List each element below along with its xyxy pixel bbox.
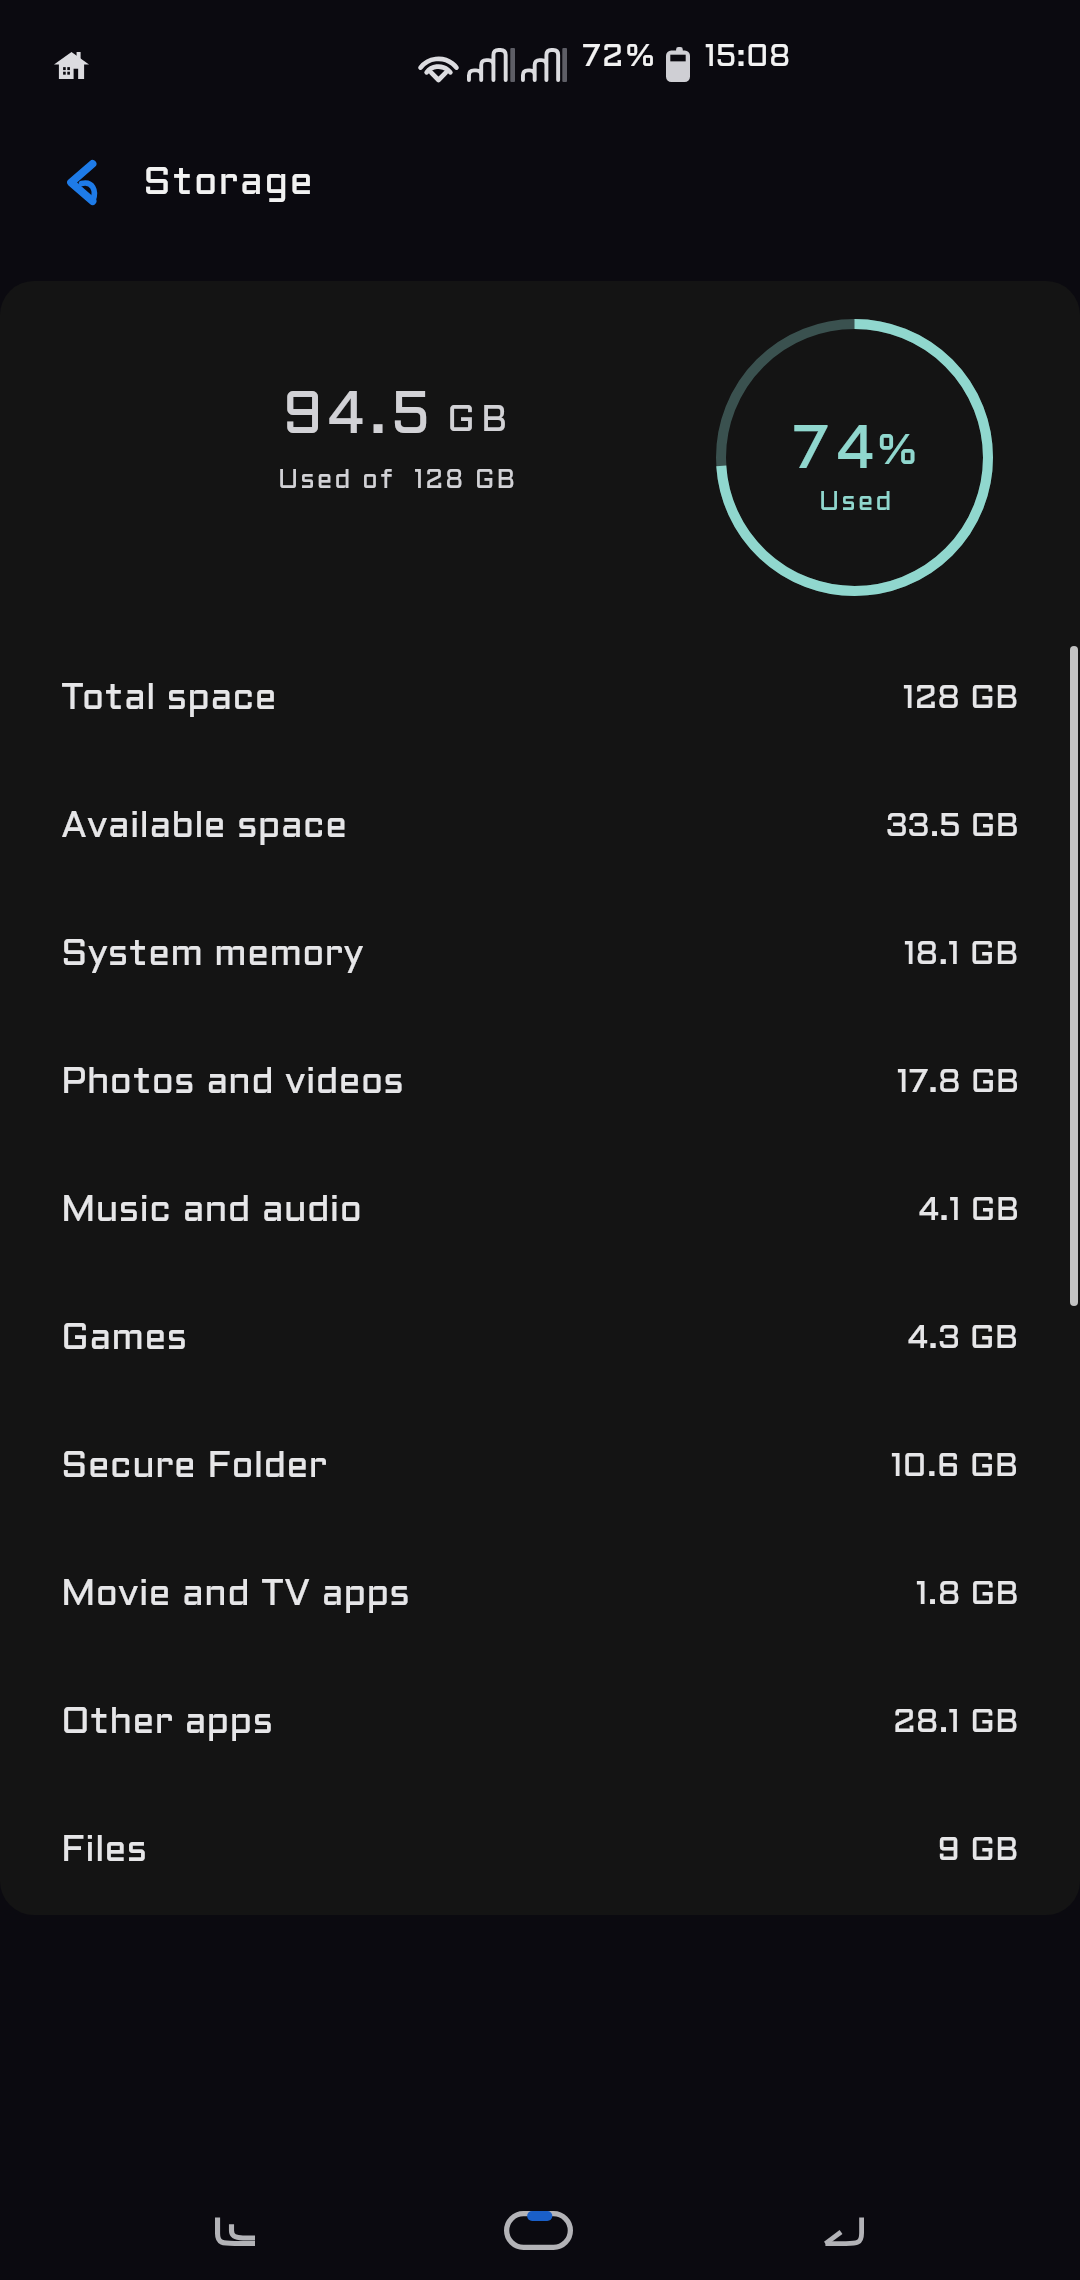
button[interactable]: Total space (0, 635, 1080, 763)
staticText: GB (447, 404, 514, 438)
staticText: Available space (61, 810, 348, 844)
button[interactable]: Back (783, 2175, 903, 2280)
staticText: Files (61, 1834, 148, 1868)
staticText: Music and audio (61, 1194, 362, 1228)
button[interactable]: Files (0, 1787, 1080, 1915)
staticText: Total space (61, 682, 277, 716)
button[interactable]: System memory (0, 891, 1080, 1019)
staticText: Other apps (61, 1706, 274, 1740)
staticText: Movie and TV apps (61, 1578, 411, 1612)
staticText: 15:08 (705, 44, 791, 73)
staticText: 10.6 GB (891, 1452, 1019, 1483)
button[interactable]: Back (45, 141, 117, 223)
staticText: 94.5 (282, 391, 435, 446)
staticText: Secure Folder (61, 1450, 328, 1484)
staticText: Photos and videos (61, 1066, 404, 1100)
staticText: Used (819, 491, 894, 515)
staticText: Storage (143, 166, 314, 202)
staticText: 4.3 GB (908, 1324, 1019, 1355)
staticText: 128 GB (903, 684, 1019, 715)
staticText: 28.1 GB (893, 1708, 1019, 1739)
staticText: 1.8 GB (916, 1580, 1019, 1611)
staticText: Used of 128 GB (278, 469, 517, 493)
staticText: 74 (792, 424, 884, 481)
button[interactable]: Photos and videos (0, 1019, 1080, 1147)
button[interactable]: Available space (0, 763, 1080, 891)
staticText: 72% (582, 44, 657, 73)
button[interactable]: Secure Folder (0, 1403, 1080, 1531)
button[interactable]: Music and audio (0, 1147, 1080, 1275)
staticText: 4.1 GB (919, 1196, 1019, 1227)
button[interactable]: Home (478, 2175, 598, 2280)
button[interactable]: Home (36, 34, 106, 96)
staticText: 9 GB (937, 1836, 1019, 1867)
button[interactable]: Games (0, 1275, 1080, 1403)
button[interactable]: Other apps (0, 1659, 1080, 1787)
staticText: Games (61, 1322, 188, 1356)
staticText: 33.5 GB (886, 812, 1019, 843)
button[interactable]: Movie and TV apps (0, 1531, 1080, 1659)
button[interactable]: Recent apps (180, 2175, 300, 2280)
staticText: System memory (61, 938, 364, 972)
staticText: % (877, 434, 918, 473)
staticText: 17.8 GB (897, 1068, 1019, 1099)
staticText: 18.1 GB (904, 940, 1019, 971)
